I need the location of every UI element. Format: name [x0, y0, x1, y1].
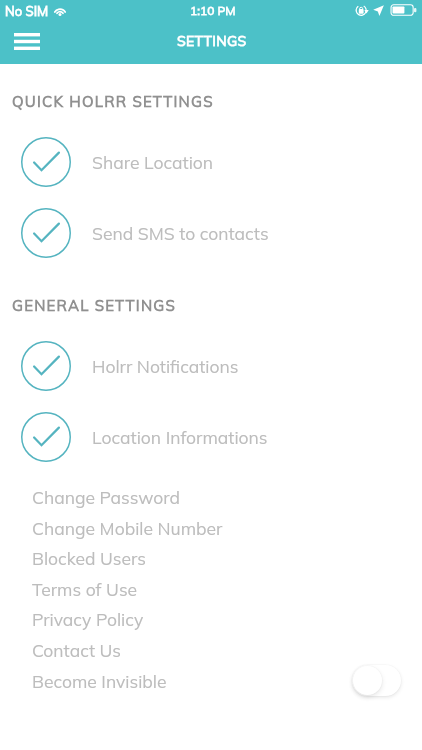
- staticText: No SIM: [5, 3, 49, 19]
- staticText: SETTINGS: [177, 32, 247, 50]
- button[interactable]: Send SMS to contacts: [0, 208, 422, 258]
- button[interactable]: Become Invisible toggle: [352, 665, 401, 696]
- button[interactable]: Change Mobile Number: [0, 512, 422, 543]
- staticText: Change Password: [32, 486, 181, 508]
- staticText: Contact Us: [32, 639, 122, 661]
- button[interactable]: Blocked Users: [0, 542, 422, 573]
- button[interactable]: Become Invisible: [0, 665, 422, 696]
- staticText: Send SMS to contacts: [92, 222, 269, 244]
- button[interactable]: Holrr Notifications: [0, 341, 422, 391]
- button[interactable]: Location Informations: [0, 412, 422, 462]
- staticText: Share Location: [92, 151, 214, 173]
- staticText: QUICK HOLRR SETTINGS: [12, 92, 214, 111]
- button[interactable]: Privacy Policy: [0, 603, 422, 634]
- staticText: Privacy Policy: [32, 608, 144, 630]
- button[interactable]: Change Password: [0, 481, 422, 512]
- staticText: Become Invisible: [32, 670, 167, 692]
- button[interactable]: Terms of Use: [0, 573, 422, 604]
- button[interactable]: Open navigation menu: [2, 22, 52, 60]
- staticText: 1:10 PM: [190, 3, 236, 18]
- staticText: GENERAL SETTINGS: [12, 296, 176, 315]
- staticText: Holrr Notifications: [92, 355, 239, 377]
- staticText: Location Informations: [92, 426, 268, 448]
- button[interactable]: Share Location: [0, 137, 422, 187]
- button[interactable]: Contact Us: [0, 634, 422, 665]
- staticText: Change Mobile Number: [32, 517, 223, 539]
- staticText: Blocked Users: [32, 547, 147, 569]
- staticText: Terms of Use: [32, 578, 138, 600]
